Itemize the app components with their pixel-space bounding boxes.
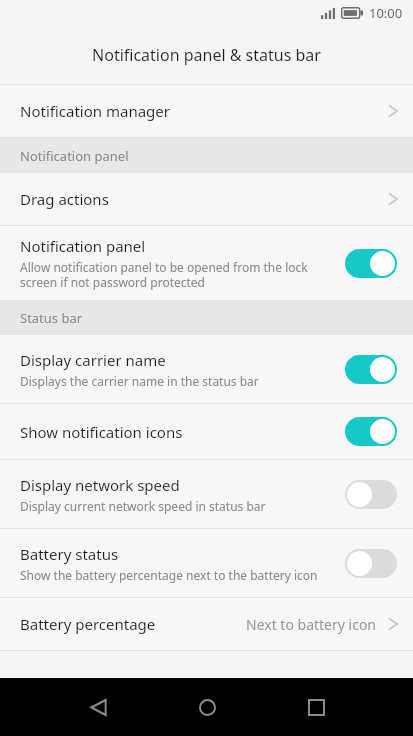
- staticText: Display network speed: [20, 475, 180, 495]
- button[interactable]: Off: [345, 480, 397, 509]
- button[interactable]: On: [345, 249, 397, 278]
- staticText: Show notification icons: [20, 422, 183, 442]
- button[interactable]: Back: [74, 683, 122, 731]
- staticText: Notification panel: [20, 236, 146, 256]
- button[interactable]: Display network speed: [0, 460, 413, 528]
- staticText: Battery percentage: [20, 614, 156, 634]
- staticText: Battery status: [20, 544, 119, 564]
- button[interactable]: Battery status: [0, 529, 413, 597]
- staticText: Notification manager: [20, 101, 170, 121]
- staticText: Show the battery percentage next to the …: [20, 567, 318, 583]
- button[interactable]: On: [345, 417, 397, 446]
- staticText: Drag actions: [20, 189, 109, 209]
- button[interactable]: Notification manager: [0, 85, 413, 137]
- staticText: Allow notification panel to be opened fr…: [20, 259, 308, 290]
- staticText: 10:00: [369, 4, 403, 22]
- staticText: Display carrier name: [20, 350, 166, 370]
- staticText: Next to battery icon: [246, 615, 377, 634]
- button[interactable]: Home: [183, 683, 231, 731]
- staticText: Displays the carrier name in the status …: [20, 373, 259, 389]
- staticText: Notification panel & status bar: [92, 44, 321, 66]
- button[interactable]: Display carrier name: [0, 335, 413, 403]
- button[interactable]: Recent apps: [292, 683, 340, 731]
- staticText: Display current network speed in status …: [20, 498, 266, 514]
- button[interactable]: On: [345, 355, 397, 384]
- button[interactable]: Off: [345, 549, 397, 578]
- staticText: Status bar: [20, 309, 83, 327]
- button[interactable]: Show notification icons: [0, 404, 413, 459]
- button[interactable]: Battery percentage: [0, 598, 413, 650]
- staticText: Notification panel: [20, 147, 129, 165]
- button[interactable]: Notification panel: [0, 226, 413, 300]
- button[interactable]: Drag actions: [0, 173, 413, 225]
